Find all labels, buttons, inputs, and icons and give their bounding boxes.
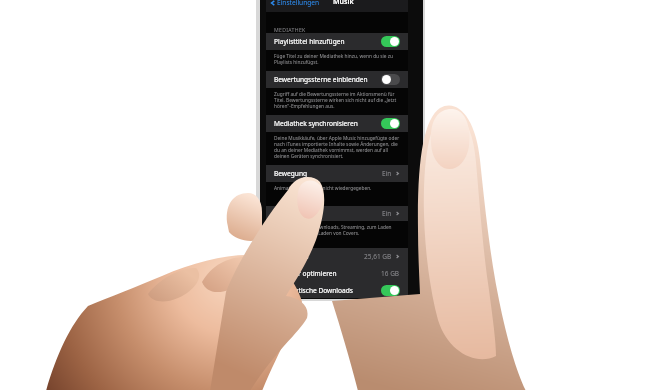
staticText: 16 GB [381,269,400,278]
staticText: Deine Musikkäufe, über Apple Music hinzu… [274,135,400,159]
staticText: Zugriff auf die Bewertungssterne im Akti… [274,91,400,109]
other: Off [381,74,400,85]
staticText: Speicher optimieren [274,269,337,278]
staticText: Playlisttitel hinzufügen [274,37,345,46]
button[interactable]: Einstellungen [270,0,320,7]
staticText: Einstellungen [277,0,320,7]
button[interactable]: Bewegung [274,165,400,182]
staticText: Ein [382,169,392,178]
staticText: Automatische Downloads [274,286,353,295]
other: On [381,36,400,47]
other: On [381,285,400,296]
button[interactable]: Downloads [274,248,400,265]
other: On [381,118,400,129]
staticText: Mobile Daten [274,209,316,218]
staticText: Musik [333,0,354,7]
staticText: MEDIATHEK [274,26,306,33]
staticText: Animationen werden nicht wiedergegeben. [274,185,372,192]
button[interactable]: Automatische Downloads [274,282,400,298]
staticText: Ein [382,209,392,218]
staticText: Füge Titel zu deiner Mediathek hinzu, we… [274,53,400,65]
button[interactable]: Bewertungssterne einblenden [274,71,400,88]
staticText: Mediathek synchronisieren [274,119,358,128]
staticText: Downloads [274,252,309,261]
staticText: Bewertungssterne einblenden [274,75,368,84]
staticText: Mobile Daten für Downloads, Streaming, z… [274,224,400,236]
staticText: 25,61 GB [364,252,392,261]
staticText: Bewegung [274,169,308,178]
button[interactable]: Playlisttitel hinzufügen [274,33,400,50]
button[interactable]: Mobile Daten [274,206,400,221]
button[interactable]: Mediathek synchronisieren [274,115,400,132]
button[interactable]: Speicher optimieren [274,265,400,282]
